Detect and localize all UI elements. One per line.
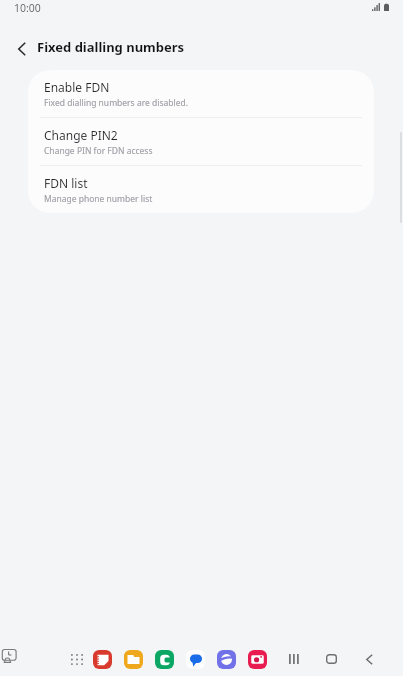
button[interactable]: Camera: [248, 650, 267, 669]
staticText: Change PIN2: [44, 127, 118, 143]
button[interactable]: Back: [352, 645, 386, 673]
button[interactable]: Change PIN2: [28, 118, 374, 165]
staticText: 10:00: [14, 1, 41, 15]
button[interactable]: Enable FDN: [28, 70, 374, 117]
staticText: Manage phone number list: [44, 193, 153, 205]
staticText: Fixed dialling numbers are disabled.: [44, 97, 188, 109]
button[interactable]: Messages: [186, 650, 205, 669]
button[interactable]: Internet: [217, 650, 236, 669]
button[interactable]: FDN list: [28, 166, 374, 213]
staticText: Fixed dialling numbers: [37, 38, 185, 56]
button[interactable]: Apps: [66, 649, 87, 669]
staticText: Change PIN for FDN access: [44, 145, 153, 157]
button[interactable]: My Files: [124, 650, 143, 669]
button[interactable]: Recent apps: [277, 645, 311, 673]
button[interactable]: Phone: [155, 650, 174, 669]
button[interactable]: Home: [314, 645, 348, 673]
button[interactable]: Recent apps panel: [0, 649, 19, 667]
button[interactable]: Samsung Notes: [93, 650, 112, 669]
staticText: Enable FDN: [44, 79, 110, 95]
button[interactable]: Navigate up: [5, 32, 39, 66]
staticText: FDN list: [44, 175, 88, 191]
